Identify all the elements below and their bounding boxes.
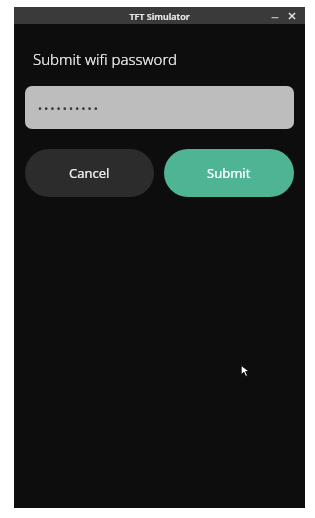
button[interactable]: Close: [285, 9, 299, 23]
staticText: Submit: [207, 164, 251, 182]
staticText: TFT Simulator: [129, 10, 190, 22]
button[interactable]: Submit: [164, 149, 294, 197]
staticText: Submit wifi password: [33, 49, 178, 69]
button[interactable]: [25, 86, 294, 129]
button[interactable]: Cancel: [25, 149, 154, 197]
staticText: Cancel: [69, 164, 110, 182]
button[interactable]: Minimize: [268, 9, 282, 23]
